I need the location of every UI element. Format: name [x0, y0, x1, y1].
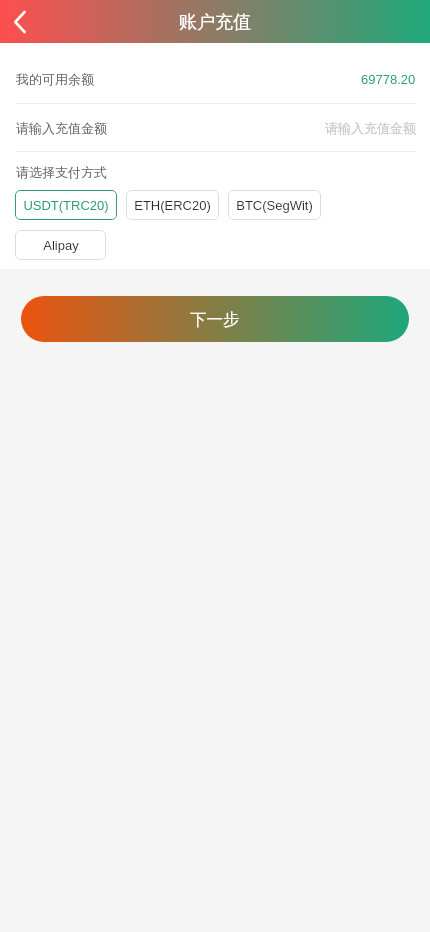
button[interactable]: USDT(TRC20) [15, 190, 117, 220]
button[interactable]: ETH(ERC20) [126, 190, 219, 220]
button[interactable]: Back [0, 0, 44, 43]
staticText: Alipay [43, 238, 79, 253]
staticText: 我的可用余额 [16, 71, 94, 87]
staticText: 请输入充值金额 [16, 120, 107, 136]
staticText: USDT(TRC20) [23, 198, 109, 213]
staticText: 账户充值 [179, 11, 251, 34]
button[interactable]: Alipay [15, 230, 106, 260]
staticText: 请输入充值金额 [325, 120, 416, 136]
button[interactable]: 请输入充值金额 [0, 104, 430, 151]
button[interactable]: BTC(SegWit) [228, 190, 321, 220]
staticText: ETH(ERC20) [134, 198, 211, 213]
button[interactable]: 下一步 [21, 296, 409, 342]
staticText: 69778.20 [361, 72, 416, 87]
staticText: 下一步 [190, 309, 240, 330]
staticText: 请选择支付方式 [16, 164, 107, 180]
staticText: BTC(SegWit) [236, 198, 313, 213]
